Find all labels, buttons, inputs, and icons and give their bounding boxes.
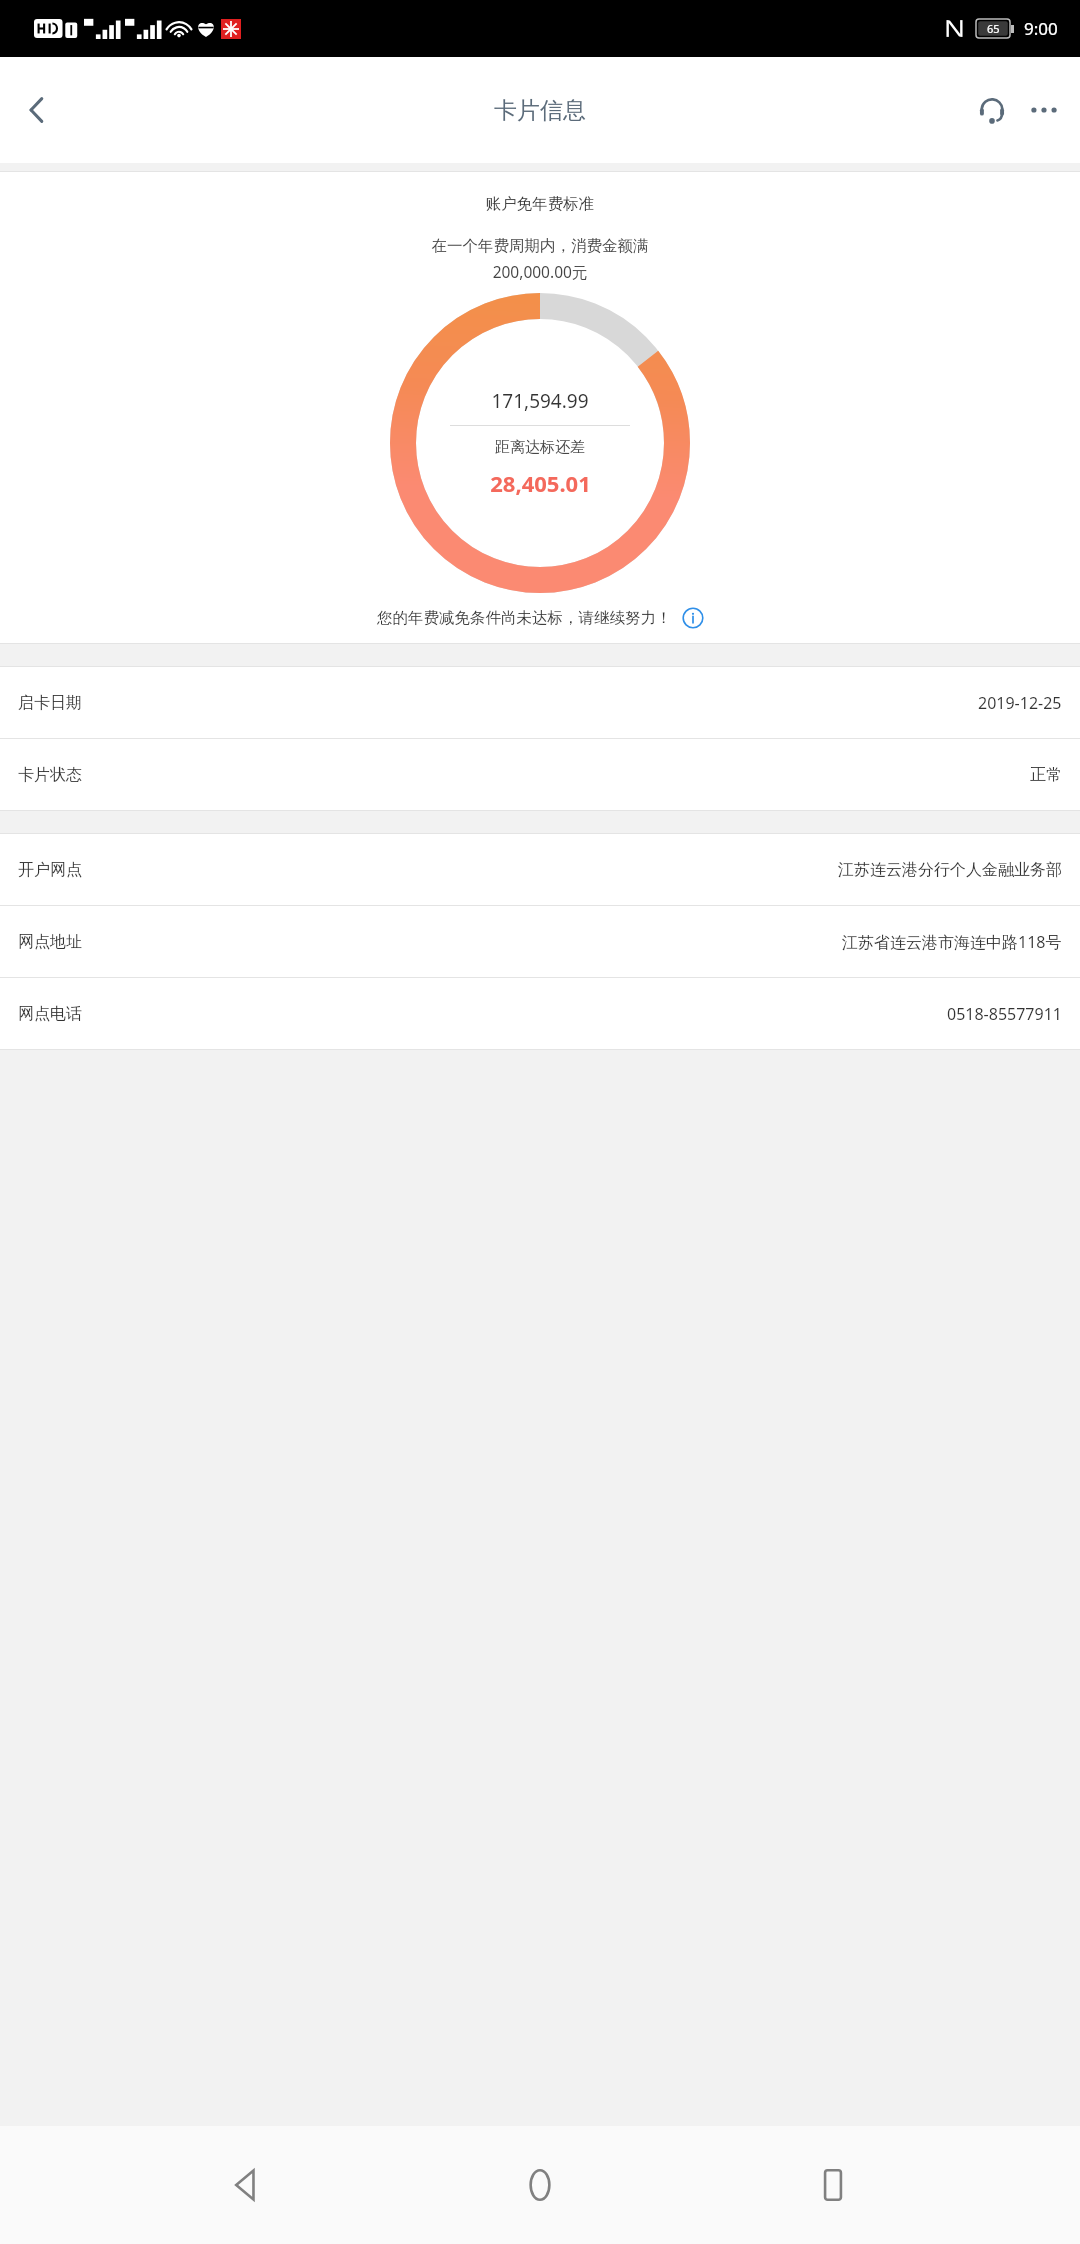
staticText: 9:00: [1024, 17, 1058, 40]
button[interactable]: 卡片状态: [0, 739, 1080, 810]
staticText: 28,405.01: [490, 468, 591, 498]
button[interactable]: 返回: [6, 79, 68, 141]
staticText: 0518-85577911: [947, 1003, 1062, 1025]
staticText: 卡片信息: [494, 96, 586, 125]
staticText: 启卡日期: [18, 693, 82, 713]
staticText: 200,000.00元: [0, 261, 1080, 282]
button[interactable]: 说明: [682, 607, 704, 629]
button[interactable]: 更多: [1020, 86, 1068, 134]
staticText: 网点地址: [18, 932, 82, 952]
staticText: 网点电话: [18, 1004, 82, 1024]
button[interactable]: 网点地址: [0, 906, 1080, 977]
staticText: 开户网点: [18, 860, 82, 880]
staticText: 您的年费减免条件尚未达标，请继续努力！: [377, 608, 672, 628]
staticText: 正常: [1030, 765, 1062, 785]
button[interactable]: 最近任务: [787, 2139, 879, 2231]
staticText: 2019-12-25: [978, 692, 1062, 714]
button[interactable]: 开户网点: [0, 834, 1080, 905]
button[interactable]: 启卡日期: [0, 667, 1080, 738]
staticText: 账户免年费标准: [0, 194, 1080, 214]
staticText: 65: [987, 21, 1000, 36]
button[interactable]: 网点电话: [0, 978, 1080, 1049]
staticText: 江苏省连云港市海连中路118号: [842, 931, 1062, 953]
button[interactable]: 返回: [201, 2139, 293, 2231]
staticText: 卡片状态: [18, 765, 82, 785]
button[interactable]: 客服: [968, 86, 1016, 134]
button[interactable]: 主页: [494, 2139, 586, 2231]
staticText: 距离达标还差: [495, 438, 585, 457]
staticText: 171,594.99: [491, 388, 589, 414]
staticText: 在一个年费周期内，消费金额满: [0, 236, 1080, 256]
staticText: 江苏连云港分行个人金融业务部: [838, 860, 1062, 880]
